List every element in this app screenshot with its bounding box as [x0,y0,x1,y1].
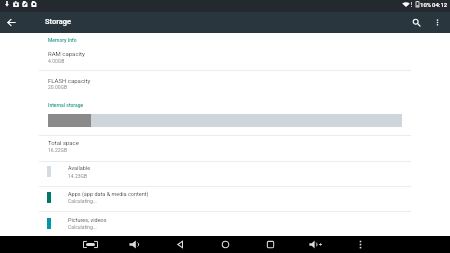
staticText: Apps (app data & media content) [68,191,149,197]
button[interactable]: Recent apps [260,236,280,253]
staticText: Internal storage [48,102,84,108]
staticText: 20.00GB [48,84,68,90]
staticText: 16.22GB [48,147,68,153]
staticText: 04:12 [432,1,448,8]
staticText: FLASH capacity [48,77,91,84]
staticText: Pictures, videos [68,217,107,223]
staticText: Calculating... [68,224,97,230]
button[interactable] [0,34,450,70]
button[interactable] [0,71,450,97]
button[interactable] [0,135,450,160]
staticText: 4.00GB [48,58,65,64]
staticText: Total space [48,139,79,146]
button[interactable]: Navigate up [1,12,22,33]
button[interactable] [0,161,450,187]
staticText: Available [68,165,91,171]
button[interactable]: Screenshot [80,236,100,253]
button[interactable]: Home [215,236,235,253]
button[interactable]: More options [350,236,370,253]
staticText: Calculating... [68,198,97,204]
staticText: RAM capacity [48,50,85,57]
button[interactable]: Volume down [124,236,144,253]
staticText: 14.23GB [68,173,88,179]
button[interactable]: Search [406,12,427,33]
button[interactable]: More options [427,12,448,33]
button[interactable] [0,186,450,211]
button[interactable] [0,211,450,236]
staticText: Storage [45,17,72,26]
button[interactable]: Back [170,236,190,253]
staticText: 10% [420,1,432,8]
staticText: Memory Info [48,37,77,43]
button[interactable]: Volume up [305,236,325,253]
